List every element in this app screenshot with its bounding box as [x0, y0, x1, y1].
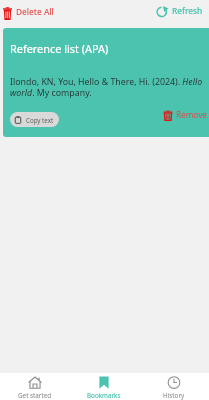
staticText: Ilondo, KN, You, Hello & There, Hi. (202…: [10, 76, 206, 99]
staticText: Refresh: [172, 5, 203, 16]
staticText: Copy text: [26, 116, 54, 124]
button[interactable]: Delete All: [0, 6, 58, 21]
staticText: Get started: [18, 391, 52, 400]
button[interactable]: Bookmarks: [69, 373, 139, 400]
button[interactable]: Refresh: [151, 3, 209, 18]
button[interactable]: Reference list (APA): [3, 28, 209, 137]
staticText: Remove: [176, 109, 207, 120]
button[interactable]: Copy text: [10, 112, 59, 127]
staticText: History: [163, 391, 185, 400]
other: History: [167, 376, 181, 389]
other: Bookmarks: [97, 376, 111, 389]
other: Get started: [28, 376, 42, 389]
staticText: Reference list (APA): [10, 41, 109, 56]
button[interactable]: Get started: [0, 373, 69, 400]
button[interactable]: Remove: [161, 112, 209, 127]
staticText: Delete All: [16, 6, 54, 17]
staticText: Bookmarks: [87, 391, 121, 400]
button[interactable]: History: [139, 373, 209, 400]
